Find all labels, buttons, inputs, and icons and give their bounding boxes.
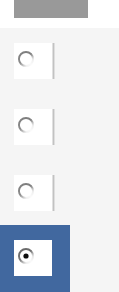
button[interactable]: Option 1	[14, 43, 52, 79]
button[interactable]: Option 3	[14, 175, 52, 211]
other: Option 4	[18, 248, 34, 264]
button[interactable]: Option 2	[14, 109, 52, 145]
other: Option 1	[18, 51, 34, 67]
other: Option 3	[18, 183, 34, 199]
other: Option 2	[18, 117, 34, 133]
button[interactable]: Option 4	[14, 240, 52, 276]
